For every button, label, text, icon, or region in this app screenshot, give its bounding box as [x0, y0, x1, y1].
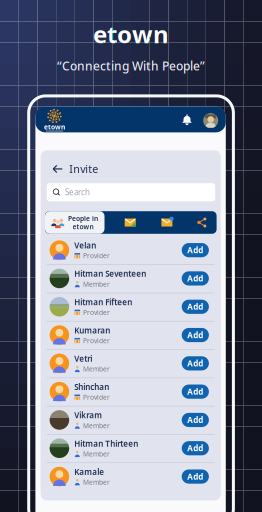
button[interactable]: Received invites — [156, 211, 178, 234]
staticText: Member — [83, 421, 110, 430]
staticText: Add — [187, 330, 203, 340]
staticText: Member — [83, 478, 110, 487]
staticText: Add — [187, 443, 203, 453]
staticText: etown — [93, 18, 169, 50]
staticText: Provider — [83, 336, 110, 345]
staticText: etown — [72, 222, 93, 231]
staticText: Provider — [83, 308, 110, 317]
staticText: Add — [187, 245, 203, 255]
button[interactable]: Notifications — [179, 111, 195, 129]
button[interactable]: Sent invites — [119, 211, 141, 234]
staticText: Vikram — [74, 410, 102, 420]
staticText: Hitman Thirteen — [74, 438, 138, 449]
staticText: Member — [83, 364, 110, 373]
staticText: Member — [83, 449, 110, 458]
button[interactable]: Velan — [41, 236, 221, 264]
staticText: Provider — [83, 393, 110, 402]
staticText: Hitman Seventeen — [74, 268, 146, 279]
button[interactable]: People in — [45, 211, 104, 234]
staticText: People in — [68, 214, 98, 223]
button[interactable]: Vikram — [41, 406, 221, 434]
staticText: etown — [44, 123, 65, 131]
button[interactable]: Share — [193, 211, 212, 234]
staticText: Member — [83, 280, 110, 288]
staticText: “Connecting With People” — [57, 58, 205, 74]
button[interactable]: Shinchan — [41, 377, 221, 406]
button[interactable]: Kamale — [41, 462, 221, 491]
staticText: Kamale — [74, 466, 104, 477]
staticText: Add — [187, 386, 203, 397]
button[interactable]: Profile — [202, 112, 220, 130]
staticText: Add — [187, 415, 203, 425]
staticText: Shinchan — [74, 382, 109, 392]
staticText: Hitman Fifteen — [74, 297, 132, 307]
staticText: Search — [65, 187, 90, 197]
button[interactable]: Hitman Fifteen — [41, 293, 221, 321]
button[interactable]: Back — [51, 162, 64, 175]
staticText: Add — [187, 301, 203, 312]
staticText: Kumaran — [74, 325, 110, 336]
staticText: Vetri — [74, 353, 92, 364]
button[interactable]: Vetri — [41, 349, 221, 377]
button[interactable]: Hitman Thirteen — [41, 434, 221, 462]
staticText: Add — [187, 273, 203, 284]
staticText: Provider — [83, 251, 110, 260]
button[interactable]: Hitman Seventeen — [41, 264, 221, 293]
button[interactable]: Kumaran — [41, 321, 221, 349]
staticText: Velan — [74, 240, 96, 251]
staticText: Add — [187, 471, 203, 482]
staticText: Add — [187, 358, 203, 369]
staticText: Invite — [69, 162, 98, 176]
